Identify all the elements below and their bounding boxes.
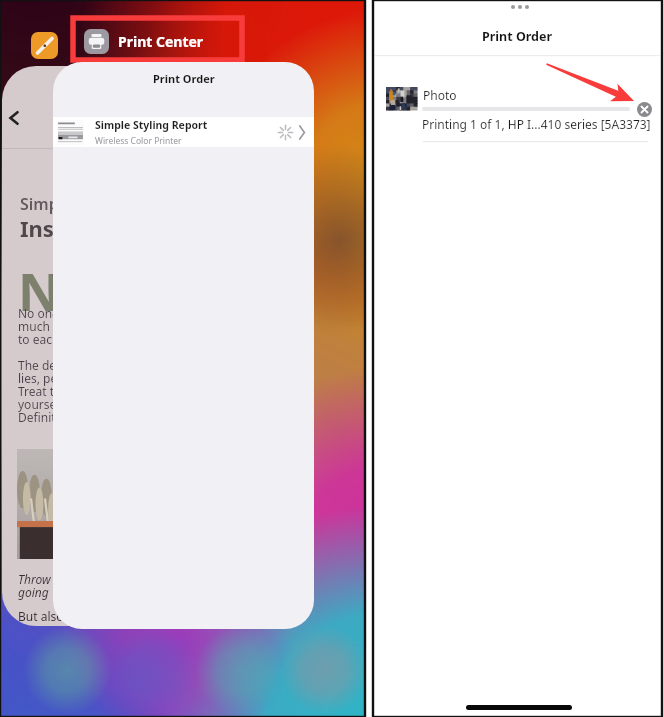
staticText: Photo (423, 87, 457, 103)
button[interactable]: Simple Styling Report (53, 117, 314, 147)
staticText: Printing 1 of 1, HP I...410 series [5A33… (422, 116, 651, 132)
staticText: Print Order (482, 28, 553, 45)
button[interactable]: Drag handle (511, 5, 529, 9)
button[interactable]: Cancel print job (637, 102, 652, 117)
staticText: The de lies, pe Treat th yourse Definit (18, 357, 62, 426)
button[interactable]: Print Center (84, 29, 204, 54)
staticText: N (18, 255, 61, 326)
staticText: Simp (20, 193, 59, 215)
staticText: Wireless Color Printer (95, 135, 182, 147)
staticText: Print Center (118, 32, 204, 51)
staticText: Simple Styling Report (95, 118, 208, 132)
staticText: Print Order (153, 71, 215, 85)
button[interactable]: Pages app icon (31, 32, 58, 59)
staticText: Throw going (18, 571, 51, 601)
staticText: No one much h to each (18, 305, 61, 348)
staticText: But also. (18, 608, 67, 624)
staticText: Insi (20, 213, 61, 243)
staticText: o r o (52, 266, 60, 322)
button[interactable]: Photo (386, 87, 649, 121)
